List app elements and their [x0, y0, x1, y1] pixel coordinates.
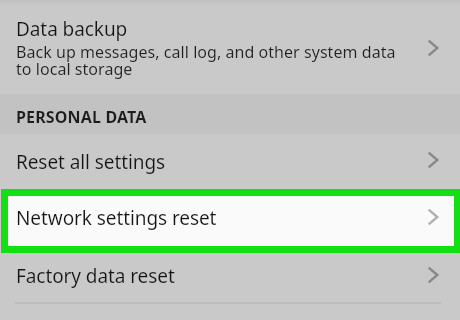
- other: Open Network settings reset: [423, 206, 443, 228]
- other: Open Data backup: [423, 37, 443, 59]
- button[interactable]: Network settings reset: [8, 196, 454, 246]
- staticText: PERSONAL DATA: [16, 106, 147, 128]
- staticText: Back up messages, call log, and other sy…: [16, 41, 396, 79]
- staticText: Data backup: [16, 16, 128, 42]
- other: Open Reset all settings: [423, 149, 443, 171]
- staticText: Reset all settings: [16, 149, 166, 175]
- button[interactable]: Factory data reset: [0, 252, 460, 303]
- button[interactable]: Reset all settings: [0, 134, 460, 189]
- other: Open Factory data reset: [423, 264, 443, 286]
- staticText: Network settings reset: [16, 205, 217, 231]
- staticText: Factory data reset: [16, 263, 175, 289]
- button[interactable]: Data backup: [0, 0, 460, 94]
